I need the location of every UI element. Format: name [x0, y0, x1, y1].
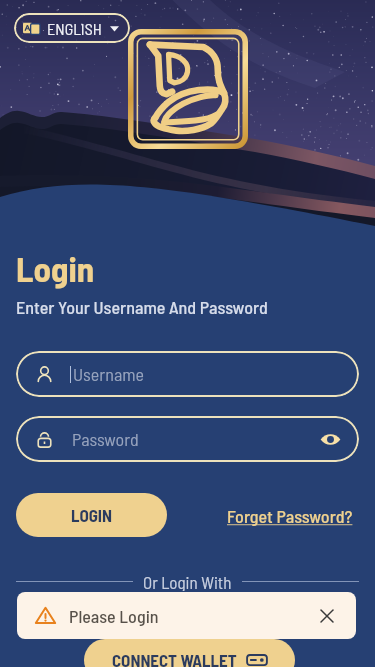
button[interactable]: LOGIN [16, 493, 167, 537]
button[interactable]: Forget Password? [222, 500, 358, 532]
staticText: Please Login [69, 605, 159, 627]
button[interactable]: Dismiss [315, 604, 339, 628]
staticText: LOGIN [71, 505, 113, 525]
staticText: Or Login With [143, 572, 232, 591]
staticText: CONNECT WALLET [112, 650, 237, 667]
staticText: ENGLISH [47, 19, 102, 38]
button[interactable]: Username [16, 351, 359, 397]
staticText: Username [73, 363, 144, 385]
staticText: Forget Password? [227, 505, 353, 527]
button[interactable]: Password [16, 416, 359, 462]
staticText: Password [72, 428, 139, 450]
button[interactable]: Show password [317, 426, 343, 452]
button[interactable]: CONNECT WALLET [84, 639, 295, 667]
staticText: Enter Your Username And Password [16, 296, 268, 318]
staticText: Login [16, 247, 95, 289]
button[interactable]: ENGLISH [14, 13, 130, 43]
